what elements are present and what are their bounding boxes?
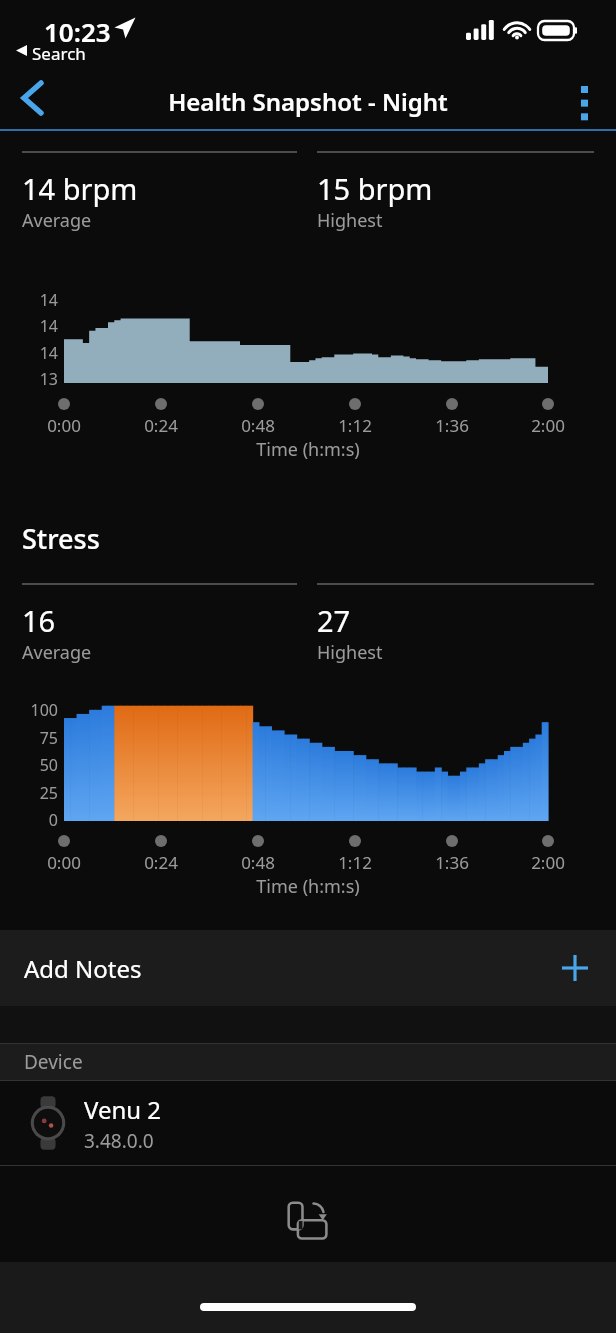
staticText: 0 [0,809,58,831]
staticText: Health Snapshot - Night [168,85,448,118]
staticText: Add Notes [24,952,142,985]
staticText: Search [32,42,86,65]
staticText: 50 [0,754,58,776]
staticText: Time (h:m:s) [0,874,616,899]
staticText: Average [22,640,92,665]
button[interactable]: Rotate screen [280,1194,336,1250]
staticText: 1:36 [412,414,492,437]
staticText: 2:00 [508,851,588,874]
staticText: Stress [22,520,100,557]
staticText: 1:36 [412,851,492,874]
staticText: 0:00 [24,414,104,437]
staticText: 2:00 [508,414,588,437]
button[interactable]: Add Notes [0,930,616,1006]
staticText: 15 brpm [317,169,433,208]
staticText: 0:48 [218,851,298,874]
staticText: 16 [22,601,56,640]
staticText: Device [24,1049,83,1075]
staticText: 14 [0,315,58,337]
staticText: 10:23 [44,14,111,49]
staticText: Time (h:m:s) [0,437,616,462]
staticText: 14 brpm [22,169,138,208]
staticText: 0:24 [121,851,201,874]
staticText: 14 [0,342,58,364]
staticText: 75 [0,727,58,749]
staticText: Average [22,208,92,233]
staticText: 3.48.0.0 [84,1128,154,1154]
staticText: Highest [317,640,383,665]
staticText: Venu 2 [84,1093,162,1126]
staticText: 25 [0,782,58,804]
staticText: 27 [317,601,351,640]
staticText: Highest [317,208,383,233]
staticText: 0:00 [24,851,104,874]
button[interactable]: Venu 2 [0,1081,616,1165]
staticText: 1:12 [315,414,395,437]
staticText: 100 [0,699,58,721]
staticText: 14 [0,289,58,311]
staticText: 1:12 [315,851,395,874]
button[interactable]: Back [6,72,58,124]
staticText: 0:24 [121,414,201,437]
button[interactable]: More options [560,77,608,125]
staticText: 0:48 [218,414,298,437]
staticText: 13 [0,368,58,390]
